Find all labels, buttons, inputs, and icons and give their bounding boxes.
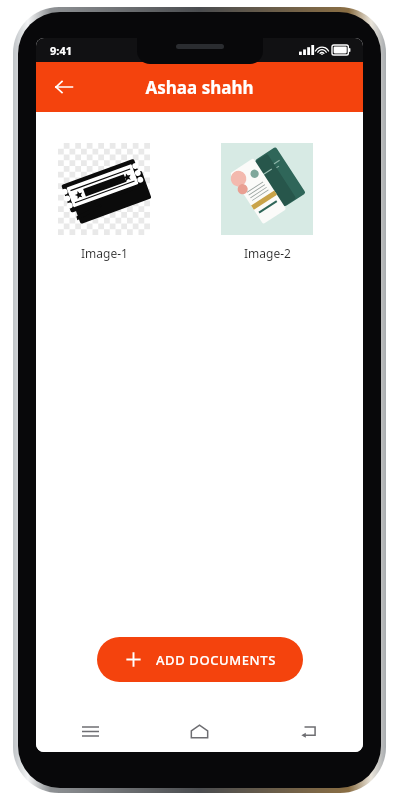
button[interactable]: Back	[254, 710, 363, 752]
button[interactable]: ADD DOCUMENTS	[97, 637, 303, 682]
button[interactable]: Back	[44, 67, 84, 107]
button[interactable]: Image-2	[221, 143, 313, 261]
staticText: Image-2	[244, 245, 291, 261]
staticText: Image-1	[81, 245, 128, 261]
button[interactable]: Recent apps	[36, 710, 145, 752]
button[interactable]: Home	[145, 710, 254, 752]
staticText: 9:41	[50, 43, 72, 58]
button[interactable]: Image-1	[58, 143, 150, 261]
staticText: Ashaa shahh	[145, 76, 254, 99]
staticText: ADD DOCUMENTS	[156, 651, 276, 669]
